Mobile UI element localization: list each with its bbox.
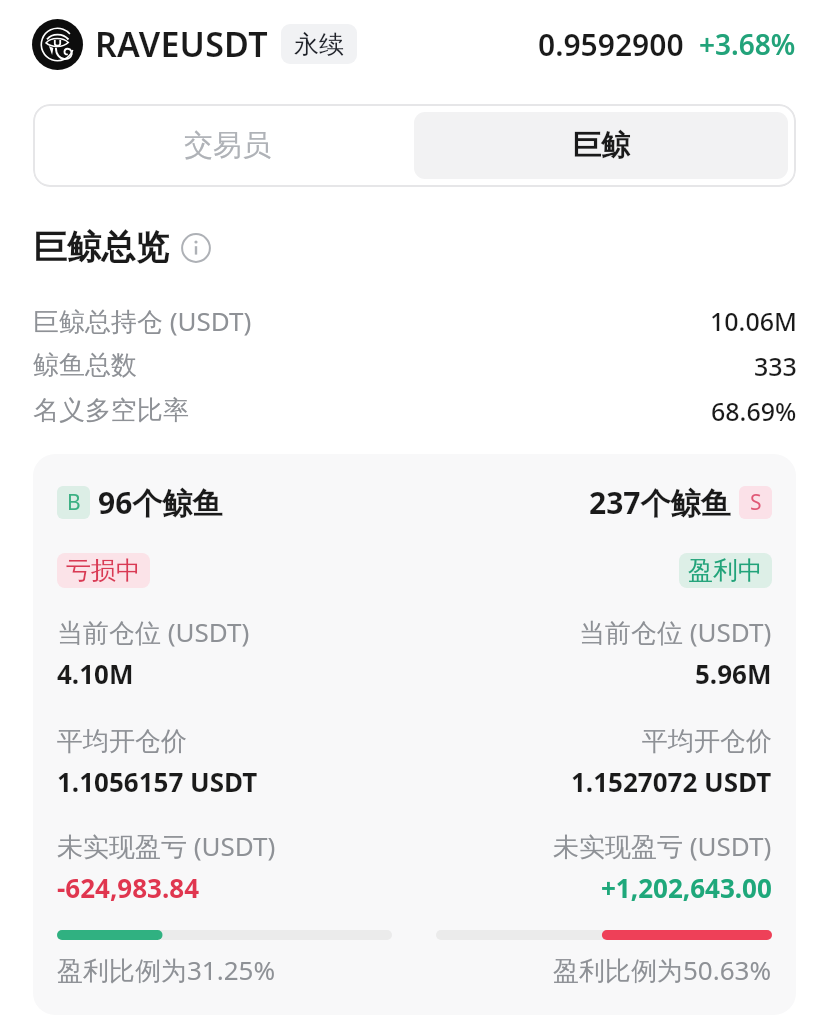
button[interactable]: 巨鲸 [414,112,788,179]
button[interactable]: About whale overview [181,233,211,263]
staticText: 1.1056157 USDT [57,764,258,799]
staticText: 巨鲸总览 [33,226,169,269]
staticText: 当前仓位 (USDT) [579,614,772,650]
staticText: 交易员 [184,127,271,164]
staticText: 未实现盈亏 (USDT) [553,828,772,864]
staticText: 68.69% [711,394,797,428]
staticText: 盈利比例为31.25% [57,952,276,988]
staticText: +3.68% [699,25,796,63]
button[interactable]: B [33,454,796,1015]
staticText: S [750,488,762,517]
staticText: 4.10M [57,656,134,691]
staticText: 96个鲸鱼 [98,482,223,523]
staticText: 1.1527072 USDT [571,764,772,799]
staticText: 0.9592900 [538,24,684,65]
staticText: 10.06M [710,304,797,338]
staticText: 盈利比例为50.63% [553,952,772,988]
staticText: 未实现盈亏 (USDT) [57,828,276,864]
other: RAVE token [32,19,83,70]
staticText: 平均开仓价 [57,725,187,758]
staticText: 237个鲸鱼 [589,482,731,523]
staticText: +1,202,643.00 [601,870,772,905]
staticText: 鲸鱼总数 [33,349,137,382]
staticText: RAVEUSDT [95,21,268,67]
staticText: 盈利中 [688,555,763,586]
staticText: 平均开仓价 [642,725,772,758]
staticText: 巨鲸 [572,127,630,164]
staticText: B [67,488,81,517]
staticText: -624,983.84 [57,870,200,905]
staticText: 333 [754,349,797,383]
staticText: 亏损中 [66,555,141,586]
staticText: 永续 [294,29,344,60]
button[interactable]: 交易员 [41,112,414,179]
staticText: 当前仓位 (USDT) [57,614,250,650]
staticText: 巨鲸总持仓 (USDT) [33,303,252,339]
staticText: 5.96M [695,656,772,691]
staticText: 名义多空比率 [33,394,189,427]
